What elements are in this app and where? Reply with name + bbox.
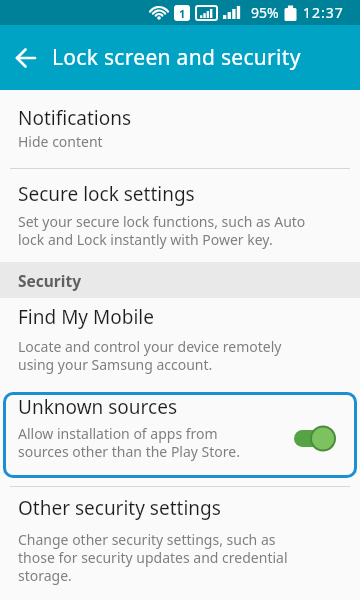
- staticText: 95%: [251, 3, 279, 22]
- button[interactable]: [0, 25, 52, 90]
- staticText: Hide content: [18, 132, 103, 151]
- staticText: Notifications: [18, 105, 132, 131]
- staticText: Locate and control your device remotely …: [18, 337, 282, 374]
- button[interactable]: Unknown sources: [0, 390, 360, 482]
- staticText: Set your secure lock functions, such as …: [18, 212, 306, 249]
- staticText: Change other security settings, such as …: [18, 530, 288, 585]
- staticText: Lock screen and security: [52, 43, 301, 72]
- staticText: 12:37: [303, 3, 344, 22]
- staticText: Unknown sources: [18, 394, 177, 420]
- button[interactable]: Other security settings: [0, 487, 360, 600]
- staticText: Other security settings: [18, 495, 221, 521]
- button[interactable]: Notifications: [0, 90, 360, 168]
- staticText: Allow installation of apps from sources …: [18, 424, 240, 461]
- staticText: Secure lock settings: [18, 181, 195, 207]
- button[interactable]: Secure lock settings: [0, 169, 360, 262]
- staticText: 1: [179, 6, 186, 21]
- staticText: Security: [18, 270, 82, 291]
- button[interactable]: Find My Mobile: [0, 298, 360, 390]
- staticText: Find My Mobile: [18, 304, 154, 330]
